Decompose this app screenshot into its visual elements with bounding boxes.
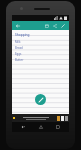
button[interactable]: Back — [16, 122, 30, 132]
staticText: Shopping — [15, 33, 30, 37]
button[interactable]: Advertisement — [12, 114, 69, 122]
button[interactable]: Delete — [43, 22, 51, 30]
button[interactable]: Home — [34, 122, 48, 132]
button[interactable]: New note — [35, 94, 46, 105]
staticText: Eggs — [15, 52, 22, 56]
staticText: Bread — [15, 46, 23, 50]
button[interactable]: Share — [51, 22, 59, 30]
staticText: Butter — [15, 58, 24, 62]
staticText: Milk — [15, 40, 21, 44]
button[interactable]: Back — [14, 22, 22, 30]
button[interactable]: Recent apps — [51, 122, 65, 132]
button[interactable]: Edit — [59, 22, 67, 30]
